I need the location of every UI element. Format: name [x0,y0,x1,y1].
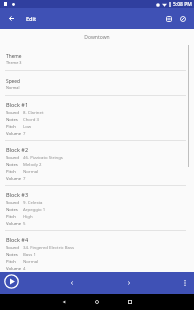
staticText: Theme [6,53,22,60]
button[interactable]: Block #2 [0,141,194,185]
staticText: Sound [6,154,19,160]
button[interactable]: Back [4,11,19,26]
staticText: Sound [6,244,19,250]
button[interactable]: Recents [122,294,138,310]
staticText: Volume [6,220,22,226]
staticText: Low [23,123,32,129]
button[interactable]: Next [121,275,137,291]
button[interactable]: Block #4 [0,231,194,272]
staticText: 8. Clarinet [23,109,44,115]
staticText: Block #2 [6,146,29,153]
staticText: Notes [6,251,18,257]
button[interactable]: Block [176,12,190,26]
staticText: Chord 3 [23,116,39,122]
staticText: 9. Celesta [23,199,43,205]
button[interactable]: Block #1 [0,96,194,140]
staticText: 7 [23,175,26,181]
button[interactable]: Home [89,294,105,310]
staticText: Normal [6,85,20,90]
staticText: Sound [6,109,19,115]
staticText: Arpeggio 1 [23,206,46,212]
staticText: 34. Fingered Electric Bass [23,244,75,250]
staticText: Speed [6,78,20,85]
staticText: Notes [6,161,18,167]
staticText: 5 [23,220,26,226]
staticText: 5:08 PM [173,1,192,8]
staticText: Block #4 [6,236,29,243]
staticText: Theme 3 [6,60,22,65]
button[interactable]: Library [162,12,176,26]
staticText: Volume [6,265,22,271]
button[interactable]: More options [177,275,193,291]
staticText: Volume [6,175,22,181]
staticText: Edit [26,15,37,23]
staticText: Normal [23,168,39,174]
staticText: Sound [6,199,19,205]
staticText: 46. Pizzicato Strings [23,154,63,160]
button[interactable]: Block #3 [0,186,194,230]
button[interactable]: Play [3,273,19,289]
staticText: Melody 2 [23,161,42,167]
staticText: Normal [23,258,39,264]
staticText: Pitch [6,213,16,219]
staticText: Bass 1 [23,251,36,257]
staticText: Notes [6,206,18,212]
button[interactable]: Speed [0,71,194,95]
staticText: Notes [6,116,18,122]
staticText: Block #3 [6,191,29,198]
staticText: Pitch [6,168,16,174]
staticText: Pitch [6,258,16,264]
staticText: High [23,213,33,219]
button[interactable]: Back [56,294,72,310]
staticText: Volume [6,130,22,136]
button[interactable]: Previous [64,275,80,291]
staticText: 7 [23,130,26,136]
staticText: Block #1 [6,101,29,108]
staticText: 4 [23,265,26,271]
staticText: Downtown [0,34,194,41]
staticText: Pitch [6,123,16,129]
button[interactable]: Theme [0,46,194,70]
